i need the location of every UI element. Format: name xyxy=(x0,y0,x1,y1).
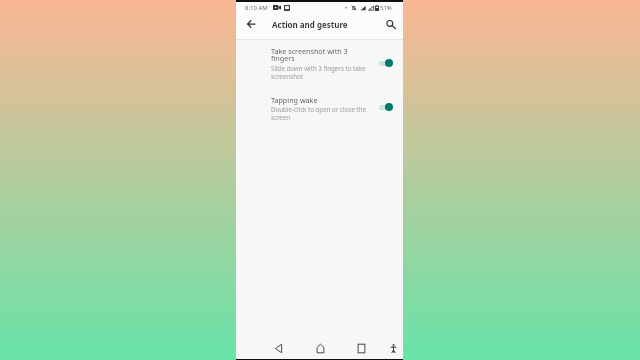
button[interactable]: Back xyxy=(270,340,286,357)
button[interactable]: Back xyxy=(242,15,260,33)
staticText: 8:10 AM xyxy=(245,4,268,12)
staticText: Slide down with 3 fingers to take screen… xyxy=(271,64,375,80)
button[interactable]: Search xyxy=(382,15,400,33)
button[interactable]: Home xyxy=(312,340,328,357)
staticText: Take screenshot with 3 fingers xyxy=(271,46,349,63)
staticText: Tapping wake xyxy=(271,95,318,105)
button[interactable]: Toggle xyxy=(377,101,397,113)
button[interactable]: Take screenshot with 3 fingers xyxy=(236,46,403,90)
staticText: Double-click to open or close the screen xyxy=(271,105,375,121)
button[interactable]: Accessibility xyxy=(385,340,401,357)
staticText: 51% xyxy=(380,4,392,12)
button[interactable]: Tapping wake xyxy=(236,95,403,139)
staticText: Action and gesture xyxy=(272,19,348,30)
button[interactable]: Recents xyxy=(353,340,369,357)
button[interactable]: Toggle xyxy=(377,57,397,69)
